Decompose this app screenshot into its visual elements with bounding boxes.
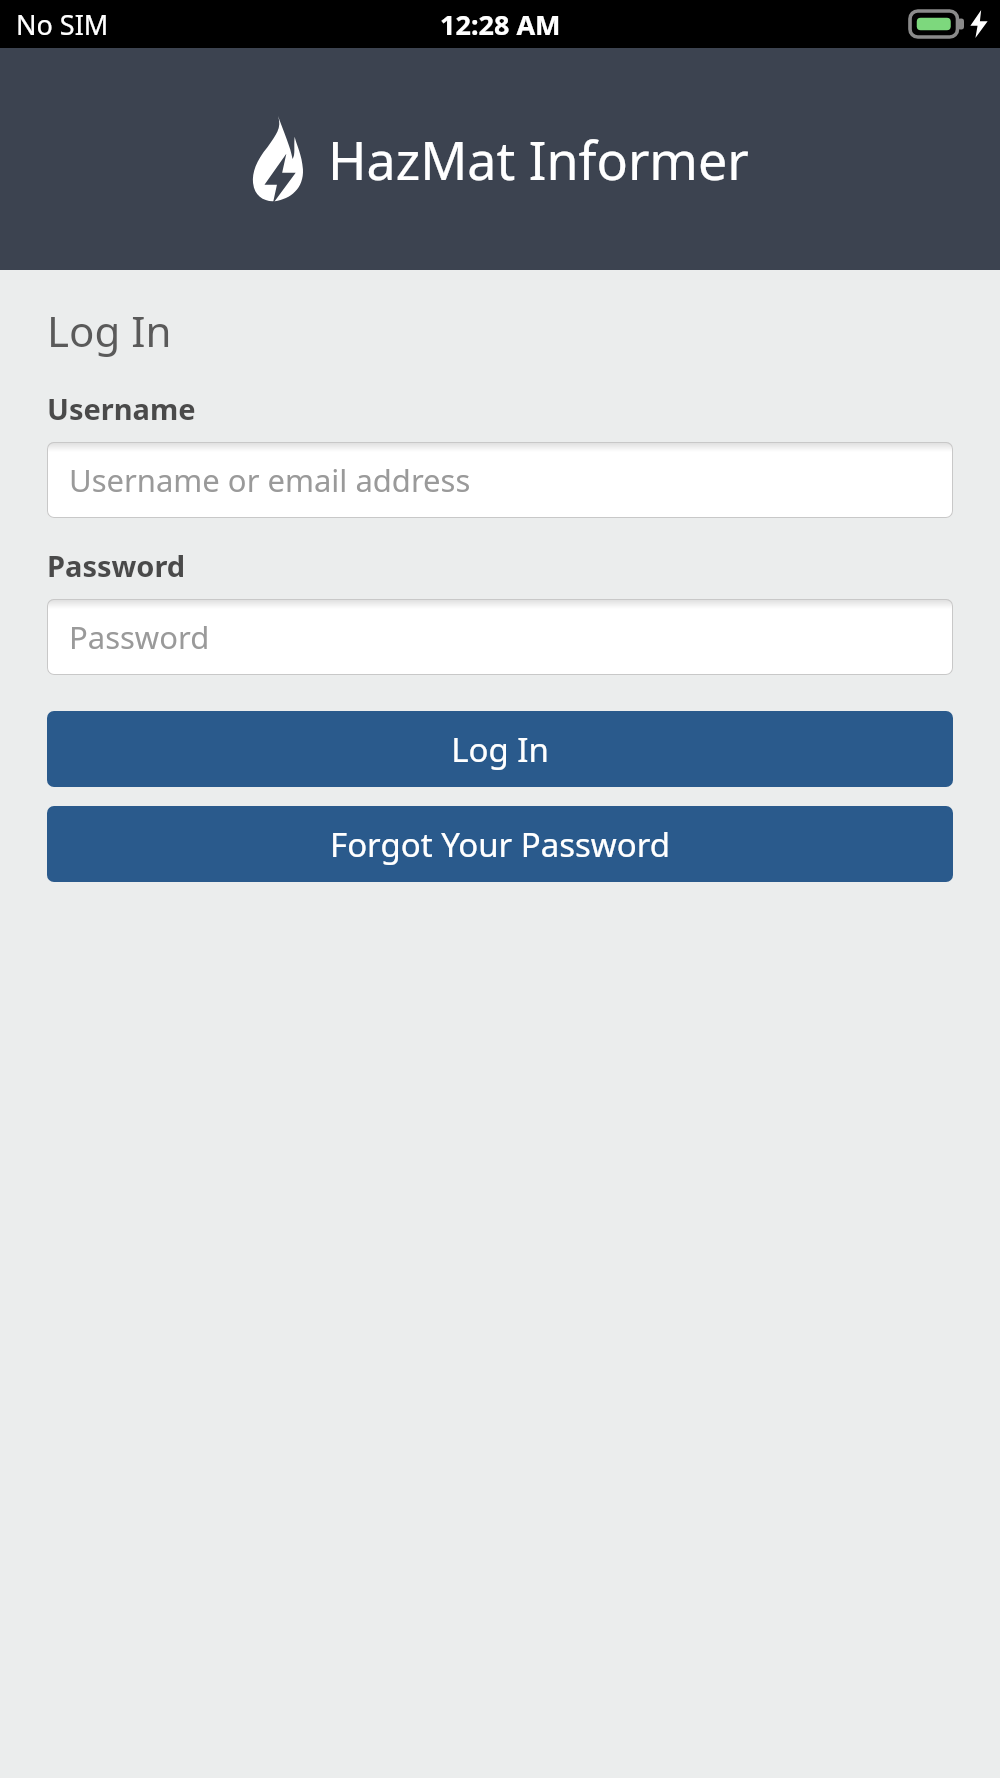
- staticText: Password: [47, 546, 186, 585]
- staticText: No SIM: [16, 6, 109, 43]
- button[interactable]: Log In: [47, 711, 953, 787]
- staticText: 12:28 AM: [440, 6, 561, 43]
- staticText: Username or email address: [69, 459, 471, 501]
- staticText: Log In: [47, 302, 172, 359]
- staticText: Username: [47, 389, 196, 428]
- button[interactable]: Username or email address: [47, 442, 953, 518]
- button[interactable]: Forgot Your Password: [47, 806, 953, 882]
- button[interactable]: Password: [47, 599, 953, 675]
- staticText: Log In: [451, 727, 549, 772]
- staticText: Password: [69, 616, 210, 658]
- staticText: HazMat Informer: [328, 124, 749, 195]
- staticText: Forgot Your Password: [330, 822, 670, 867]
